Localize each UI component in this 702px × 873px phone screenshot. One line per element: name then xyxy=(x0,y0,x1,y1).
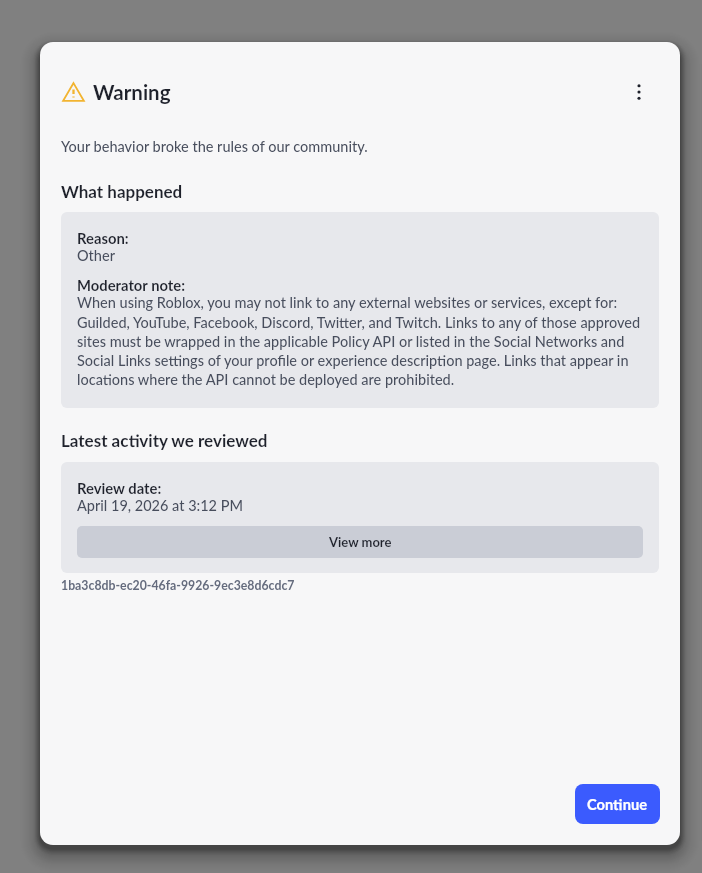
staticText: 1ba3c8db-ec20-46fa-9926-9ec3e8d6cdc7 xyxy=(61,578,295,593)
button[interactable]: View more xyxy=(77,526,643,558)
staticText: Reason: xyxy=(77,229,129,247)
staticText: View more xyxy=(329,534,392,550)
button[interactable]: More options xyxy=(624,77,654,107)
staticText: What happened xyxy=(61,181,183,201)
staticText: April 19, 2026 at 3:12 PM xyxy=(77,497,243,514)
staticText: Other xyxy=(77,247,115,264)
staticText: Continue xyxy=(587,795,648,813)
button[interactable]: Continue xyxy=(575,784,660,824)
staticText: Moderator note: xyxy=(77,276,185,294)
staticText: Your behavior broke the rules of our com… xyxy=(61,138,368,155)
staticText: Latest activity we reviewed xyxy=(61,430,268,450)
staticText: Warning xyxy=(93,80,171,105)
staticText: Review date: xyxy=(77,479,162,497)
staticText: When using Roblox, you may not link to a… xyxy=(77,294,643,388)
